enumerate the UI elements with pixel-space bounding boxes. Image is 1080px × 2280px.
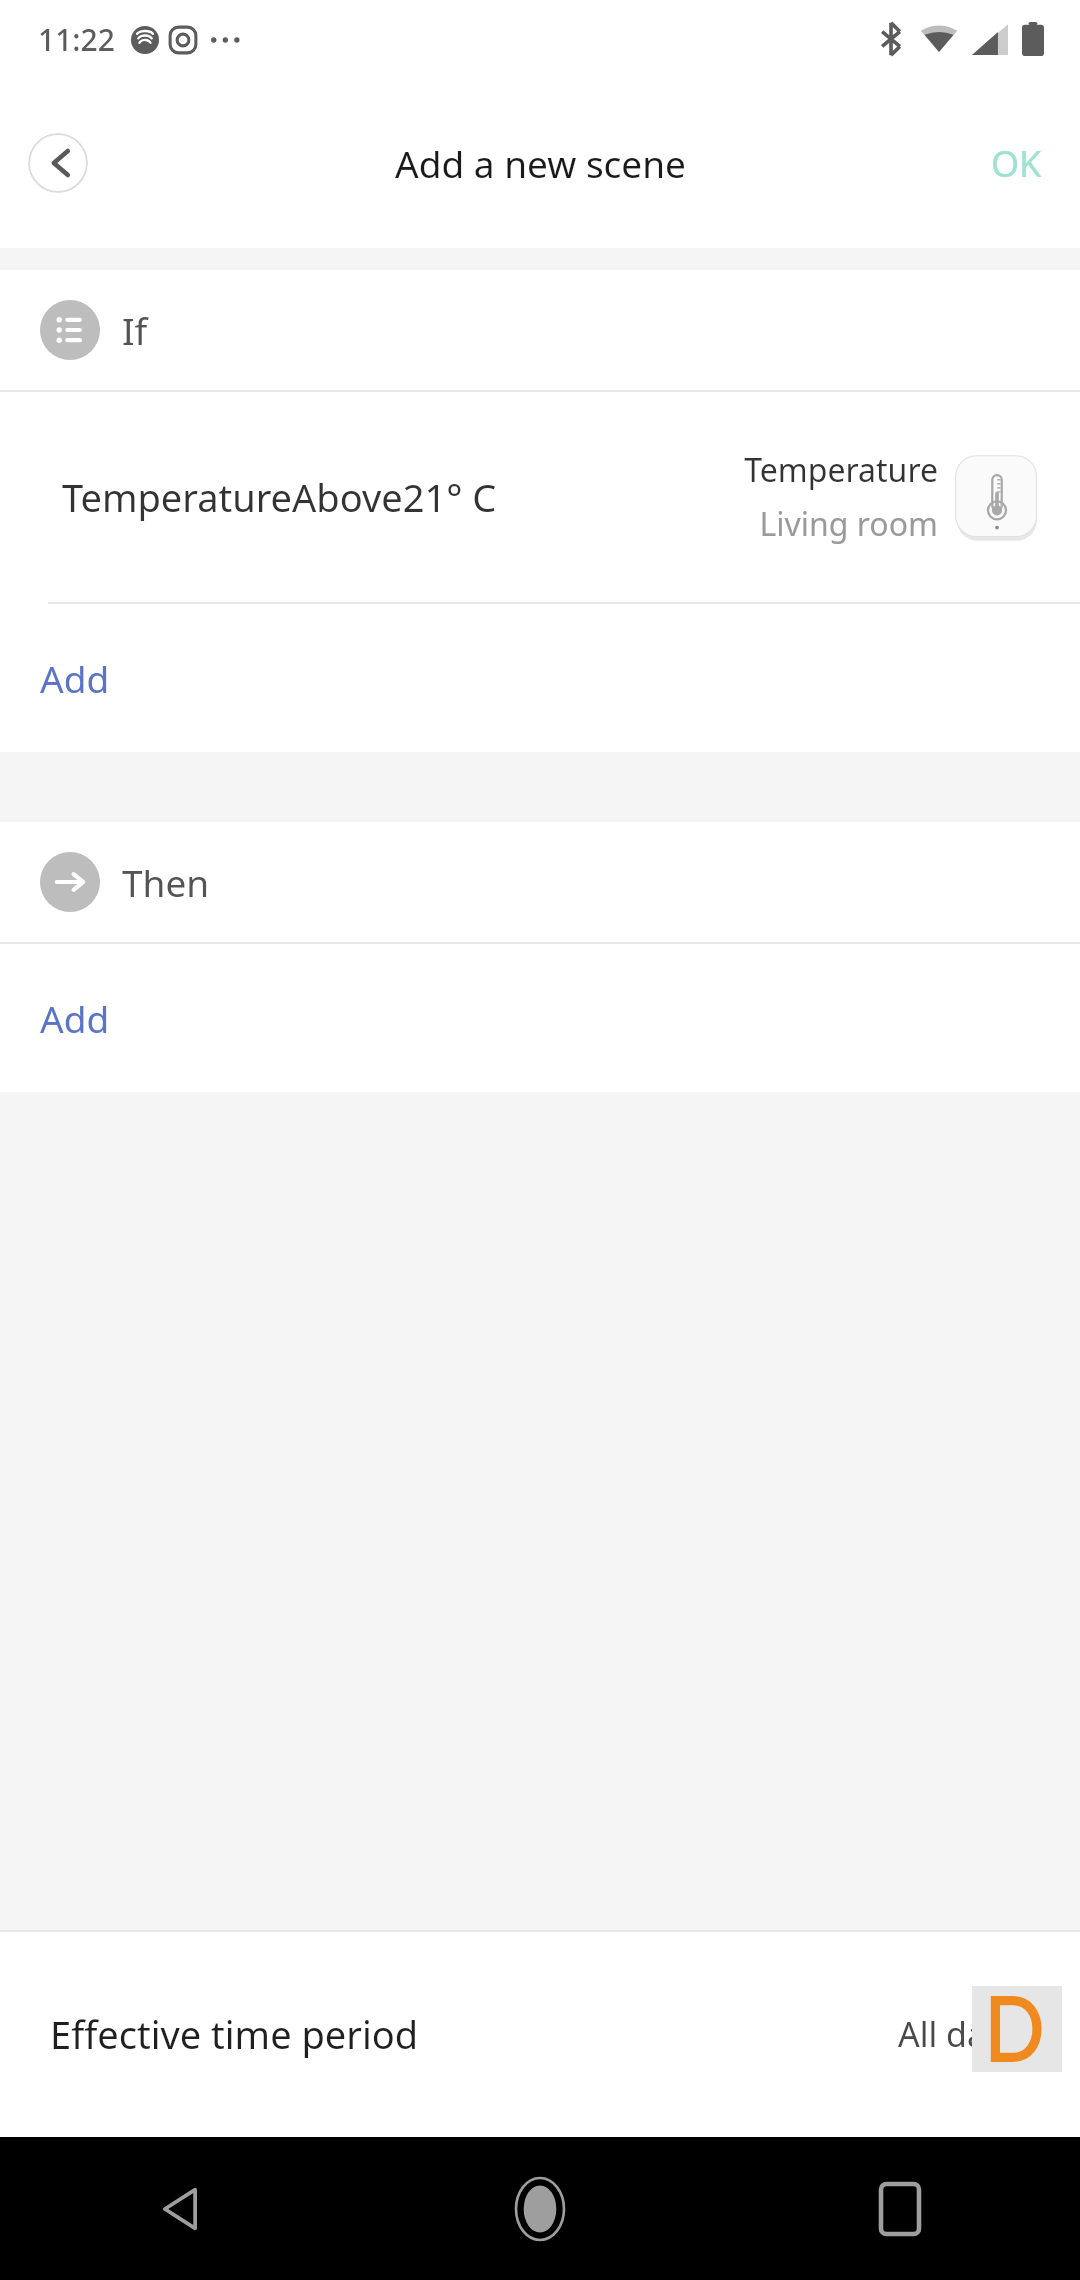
button[interactable]: Then bbox=[0, 822, 1080, 942]
staticText: Add bbox=[40, 993, 110, 1043]
staticText: Effective time period bbox=[50, 2008, 419, 2060]
button[interactable]: Add bbox=[0, 604, 1080, 752]
staticText: OK bbox=[991, 139, 1042, 188]
staticText: Temperature and… bbox=[654, 448, 938, 492]
staticText: 11:22 bbox=[38, 19, 115, 60]
staticText: TemperatureAbove21° C bbox=[62, 471, 497, 523]
staticText: Living room bbox=[759, 502, 938, 546]
staticText: Add a new scene bbox=[395, 138, 686, 188]
staticText: All day bbox=[898, 2011, 1004, 2057]
button[interactable]: TemperatureAbove21° C bbox=[0, 392, 1080, 602]
button[interactable]: OK bbox=[963, 123, 1070, 204]
button[interactable]: Effective time period bbox=[0, 1930, 1080, 2137]
button[interactable]: Recent apps bbox=[720, 2137, 1080, 2280]
button[interactable]: If bbox=[0, 270, 1080, 390]
button[interactable]: Back bbox=[0, 2137, 360, 2280]
button[interactable]: Back bbox=[28, 133, 88, 193]
staticText: Then bbox=[122, 857, 210, 907]
button[interactable]: Home bbox=[360, 2137, 720, 2280]
button[interactable]: Add bbox=[0, 944, 1080, 1092]
staticText: Add bbox=[40, 653, 110, 703]
staticText: If bbox=[122, 305, 148, 355]
